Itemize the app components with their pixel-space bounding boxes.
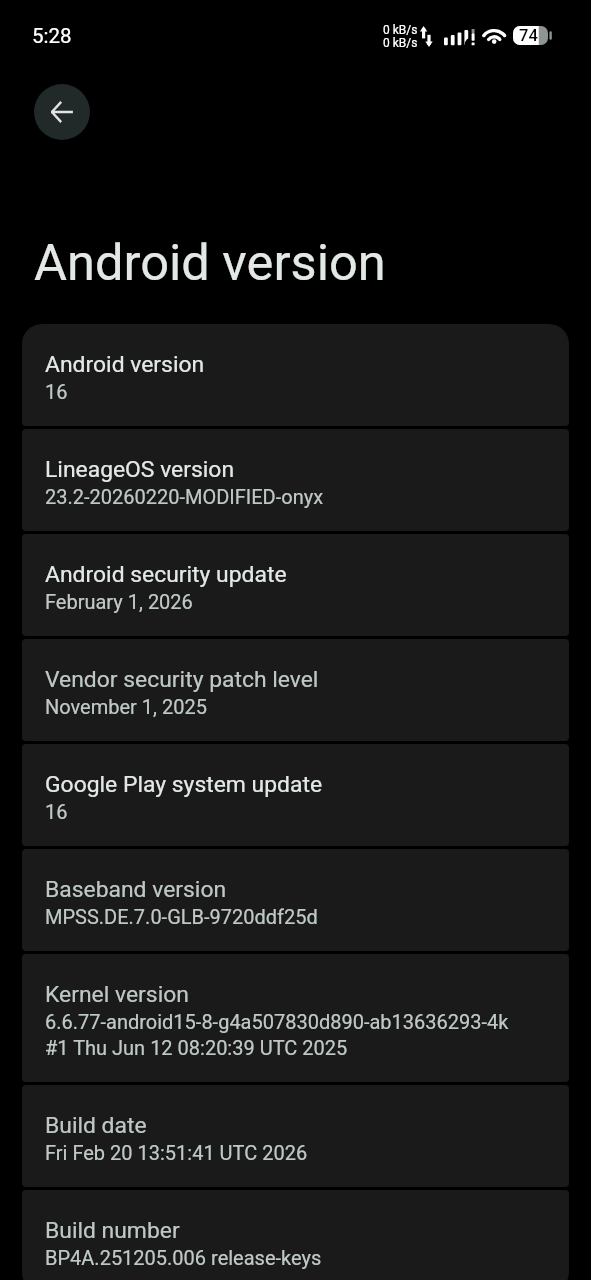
staticText: Vendor security patch level <box>45 663 319 693</box>
button[interactable]: Build date <box>22 1085 569 1187</box>
staticText: 16 <box>45 378 68 404</box>
staticText: LineageOS version <box>45 453 235 483</box>
staticText: Build date <box>45 1109 147 1139</box>
button[interactable]: Android security update <box>22 534 569 636</box>
staticText: 16 <box>45 798 68 824</box>
button[interactable]: Navigate up <box>34 84 90 140</box>
staticText: Android security update <box>45 558 287 588</box>
button[interactable]: Build number <box>22 1190 569 1280</box>
staticText: BP4A.251205.006 release-keys <box>45 1244 322 1270</box>
other: Battery 74 percent <box>513 26 552 45</box>
button[interactable]: Vendor security patch level <box>22 639 569 741</box>
staticText: Google Play system update <box>45 768 323 798</box>
staticText: Android version <box>34 234 386 292</box>
button[interactable]: Kernel version <box>22 954 569 1082</box>
staticText: February 1, 2026 <box>45 588 193 614</box>
button[interactable]: Google Play system update <box>22 744 569 846</box>
staticText: 6.6.77-android15-8-g4a507830d890-ab13636… <box>45 1008 509 1034</box>
other: Mobile signal <box>444 29 475 46</box>
staticText: #1 Thu Jun 12 08:20:39 UTC 2025 <box>45 1034 348 1060</box>
staticText: 0 kB/s <box>383 23 418 36</box>
button[interactable]: Baseband version <box>22 849 569 951</box>
staticText: Kernel version <box>45 978 189 1008</box>
staticText: 0 kB/s <box>383 36 418 49</box>
button[interactable]: Android version <box>22 324 569 426</box>
staticText: Android version <box>45 348 205 378</box>
other: Wi-Fi <box>482 27 507 45</box>
staticText: Fri Feb 20 13:51:41 UTC 2026 <box>45 1139 308 1165</box>
staticText: MPSS.DE.7.0-GLB-9720ddf25d <box>45 903 318 929</box>
staticText: November 1, 2025 <box>45 693 207 719</box>
staticText: 23.2-20260220-MODIFIED-onyx <box>45 483 324 509</box>
staticText: Baseband version <box>45 873 227 903</box>
staticText: 5:28 <box>32 26 72 48</box>
other: Network traffic <box>420 26 433 47</box>
button[interactable]: LineageOS version <box>22 429 569 531</box>
staticText: Build number <box>45 1214 180 1244</box>
staticText: 74 <box>519 26 538 45</box>
